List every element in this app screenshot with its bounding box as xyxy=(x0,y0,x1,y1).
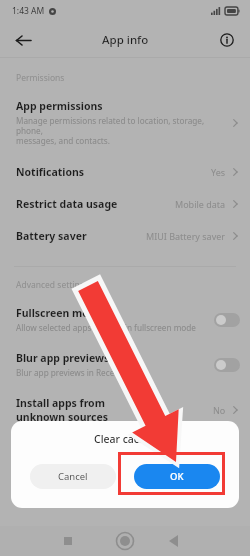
staticText: 1:43 AM xyxy=(12,5,45,17)
button[interactable]: OK xyxy=(134,464,220,489)
staticText: Yes xyxy=(211,166,226,178)
button[interactable]: Home xyxy=(111,526,250,556)
button[interactable]: App permissions xyxy=(0,90,250,156)
button[interactable]: Back xyxy=(10,27,36,53)
staticText: Restrict data usage xyxy=(16,197,118,211)
staticText: No xyxy=(213,404,226,416)
staticText: Clear cache? xyxy=(94,432,157,446)
staticText: App info xyxy=(102,32,149,48)
staticText: Blur app previews xyxy=(16,351,110,365)
button[interactable]: Toggle Blur app previews xyxy=(214,358,240,372)
staticText: Fullscreen mode xyxy=(16,306,102,320)
staticText: Mobile data xyxy=(175,198,226,210)
staticText: Cancel xyxy=(58,470,88,483)
staticText: Install apps from unknown sources xyxy=(16,396,108,424)
staticText: Battery saver xyxy=(16,229,87,243)
button[interactable]: Info xyxy=(214,27,240,53)
staticText: Blur app previews in Recents xyxy=(16,367,127,378)
staticText: MIUI Battery saver xyxy=(146,230,226,242)
staticText: Notifications xyxy=(16,165,85,179)
staticText: Allow selected apps to work in fullscree… xyxy=(16,322,196,333)
staticText: Permissions xyxy=(16,72,65,84)
staticText: Advanced settings xyxy=(16,279,90,291)
button[interactable]: Recents xyxy=(55,526,250,556)
button[interactable]: Toggle Fullscreen mode xyxy=(214,313,240,327)
button[interactable]: Notifications xyxy=(0,156,250,188)
button[interactable]: Battery saver xyxy=(0,220,250,252)
staticText: Manage permissions related to location, … xyxy=(16,115,231,147)
staticText: OK xyxy=(170,470,184,483)
button[interactable]: Fullscreen mode xyxy=(0,297,250,342)
button[interactable]: Install apps from unknown sources xyxy=(0,387,250,433)
button[interactable]: Blur app previews xyxy=(0,342,250,387)
button[interactable]: Restrict data usage xyxy=(0,188,250,220)
button[interactable]: Back xyxy=(163,526,250,556)
button[interactable]: Cancel xyxy=(30,464,116,489)
staticText: App permissions xyxy=(16,99,103,113)
